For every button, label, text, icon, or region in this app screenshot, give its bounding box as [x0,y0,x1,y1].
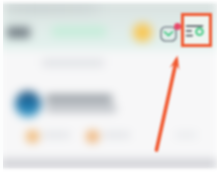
button[interactable]: Messages [157,23,180,45]
button[interactable]: Filter list [184,16,209,44]
